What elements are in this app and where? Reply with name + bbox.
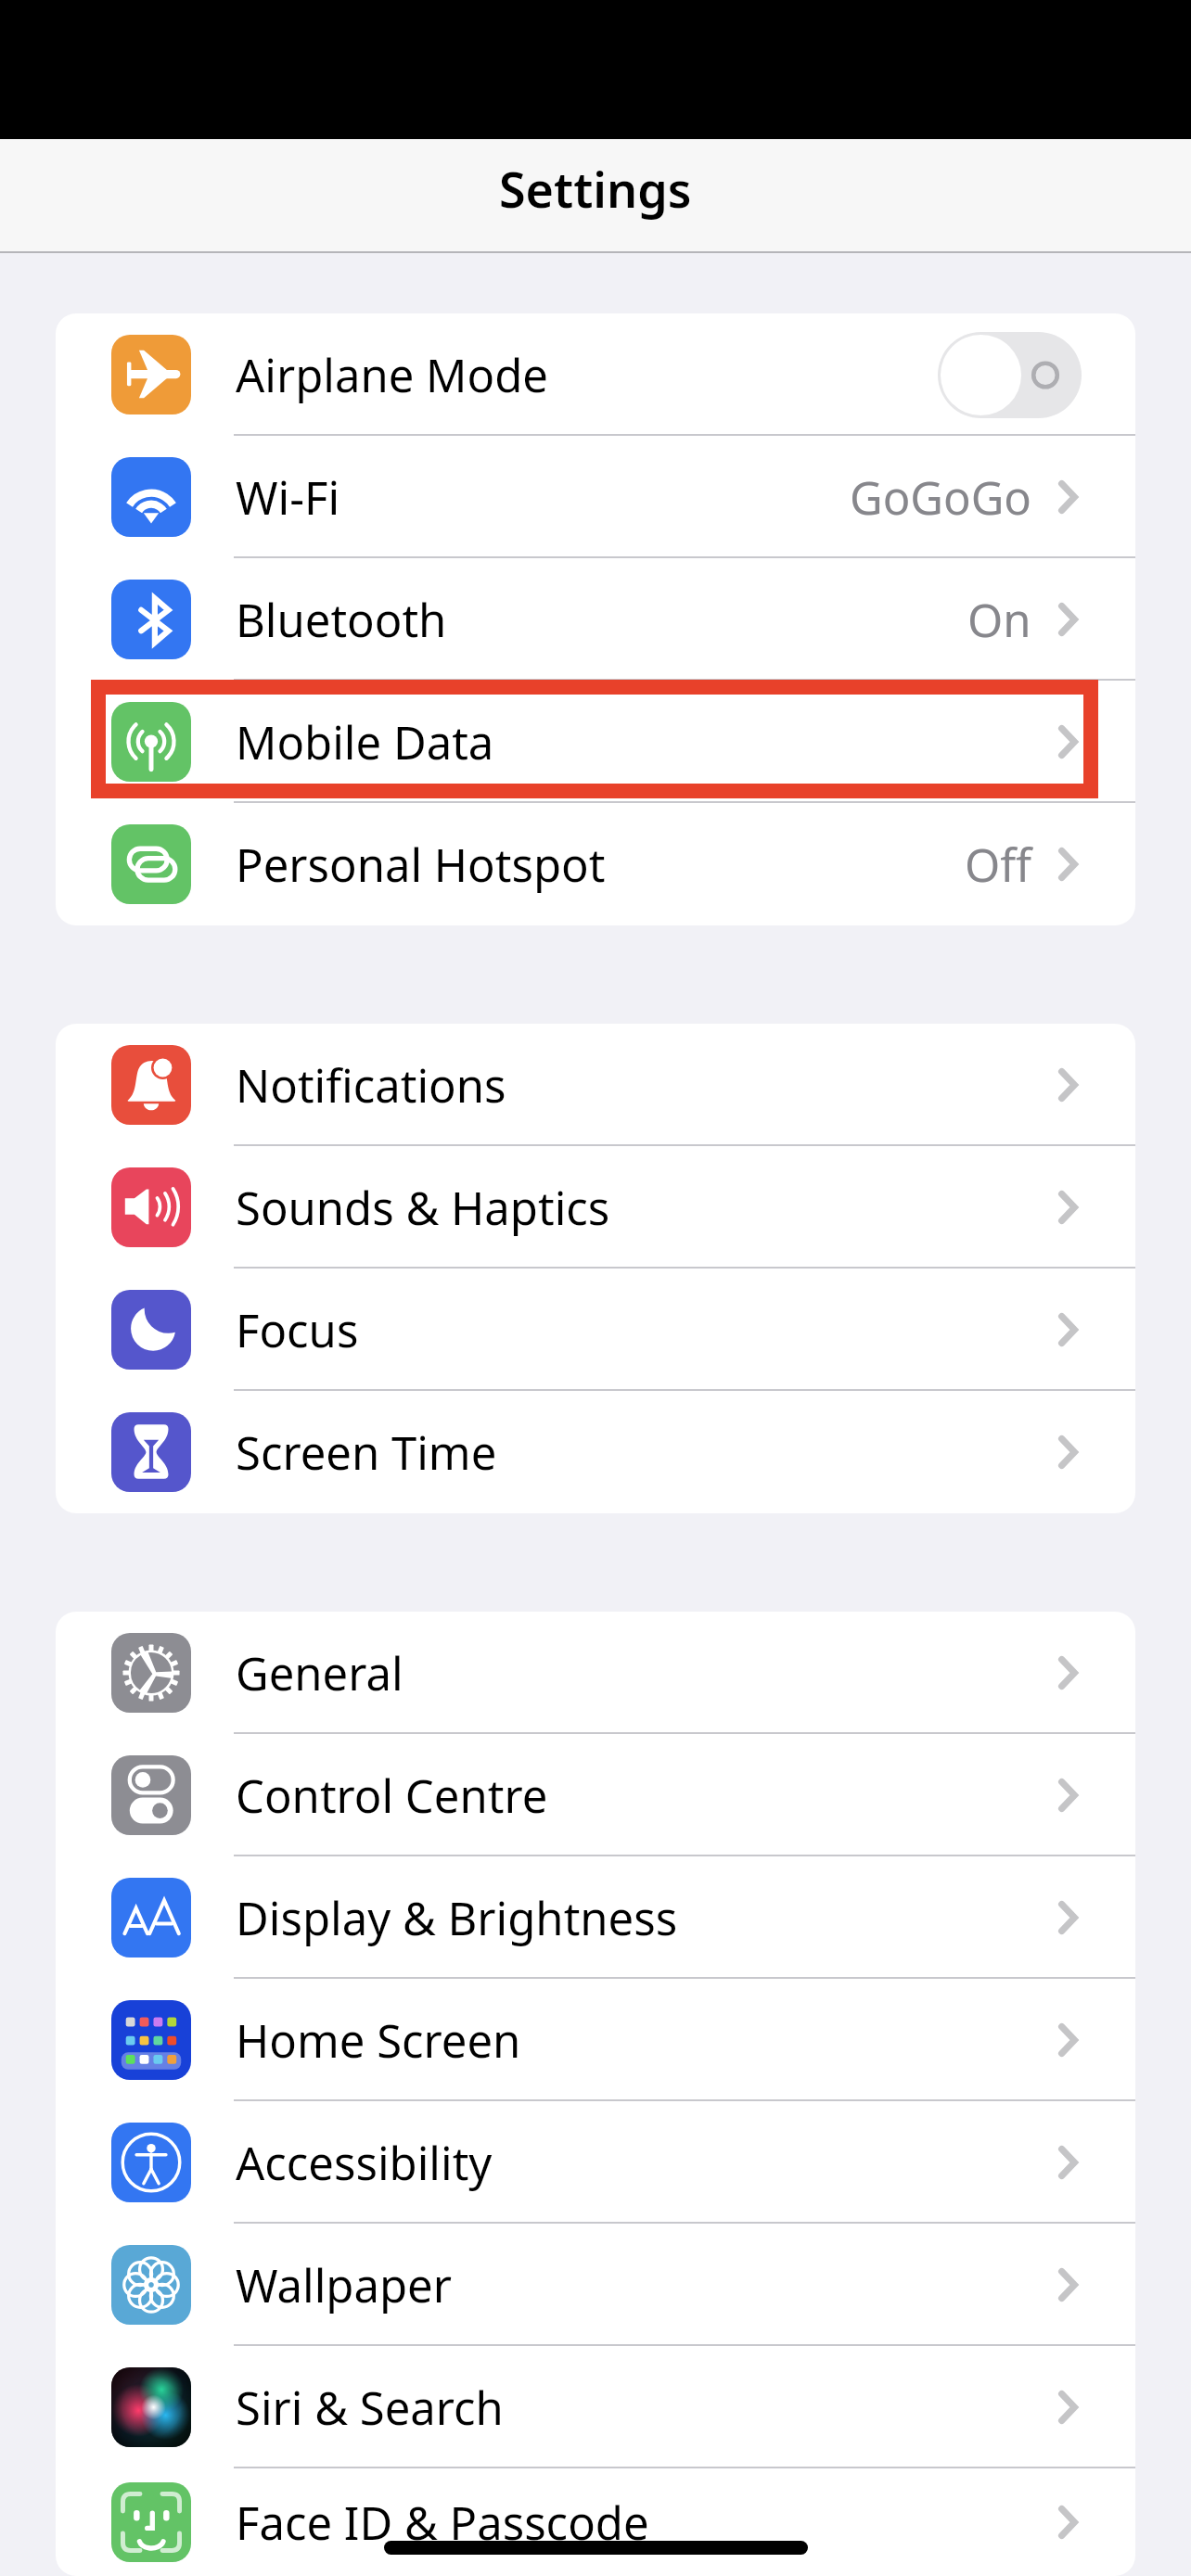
- staticText: Off: [965, 834, 1031, 896]
- staticText: Bluetooth: [236, 589, 447, 651]
- button[interactable]: Mobile Data: [56, 681, 1135, 803]
- staticText: Display & Brightness: [236, 1887, 678, 1949]
- button[interactable]: Accessibility: [56, 2101, 1135, 2224]
- staticText: Notifications: [236, 1054, 506, 1116]
- button[interactable]: Display & Brightness: [56, 1856, 1135, 1979]
- button[interactable]: Face ID & Passcode: [56, 2468, 1135, 2576]
- staticText: Airplane Mode: [236, 344, 548, 406]
- button[interactable]: General: [56, 1612, 1135, 1734]
- staticText: Home Screen: [236, 2009, 521, 2072]
- staticText: Wi-Fi: [236, 466, 340, 529]
- staticText: Control Centre: [236, 1765, 548, 1827]
- staticText: GoGoGo: [850, 466, 1031, 529]
- button[interactable]: Control Centre: [56, 1734, 1135, 1856]
- staticText: Mobile Data: [236, 711, 494, 773]
- staticText: Sounds & Haptics: [236, 1177, 610, 1239]
- button[interactable]: Focus: [56, 1269, 1135, 1391]
- button[interactable]: Notifications: [56, 1024, 1135, 1146]
- staticText: Personal Hotspot: [236, 834, 606, 896]
- button[interactable]: Sounds & Haptics: [56, 1146, 1135, 1269]
- staticText: Screen Time: [236, 1422, 497, 1484]
- staticText: Face ID & Passcode: [236, 2492, 649, 2554]
- staticText: Siri & Search: [236, 2377, 504, 2439]
- staticText: Settings: [499, 156, 692, 222]
- button[interactable]: Wi-Fi: [56, 436, 1135, 558]
- button[interactable]: Bluetooth: [56, 558, 1135, 681]
- staticText: Wallpaper: [236, 2254, 452, 2316]
- staticText: Accessibility: [236, 2132, 493, 2194]
- staticText: On: [967, 589, 1031, 651]
- staticText: Focus: [236, 1299, 359, 1361]
- button[interactable]: Siri & Search: [56, 2346, 1135, 2468]
- button[interactable]: Airplane Mode: [56, 313, 1135, 436]
- button[interactable]: Screen Time: [56, 1391, 1135, 1513]
- staticText: General: [236, 1642, 403, 1704]
- button[interactable]: Personal Hotspot: [56, 803, 1135, 925]
- button[interactable]: Home Screen: [56, 1979, 1135, 2101]
- button[interactable]: Airplane Mode toggle, off: [938, 332, 1082, 418]
- button[interactable]: Wallpaper: [56, 2224, 1135, 2346]
